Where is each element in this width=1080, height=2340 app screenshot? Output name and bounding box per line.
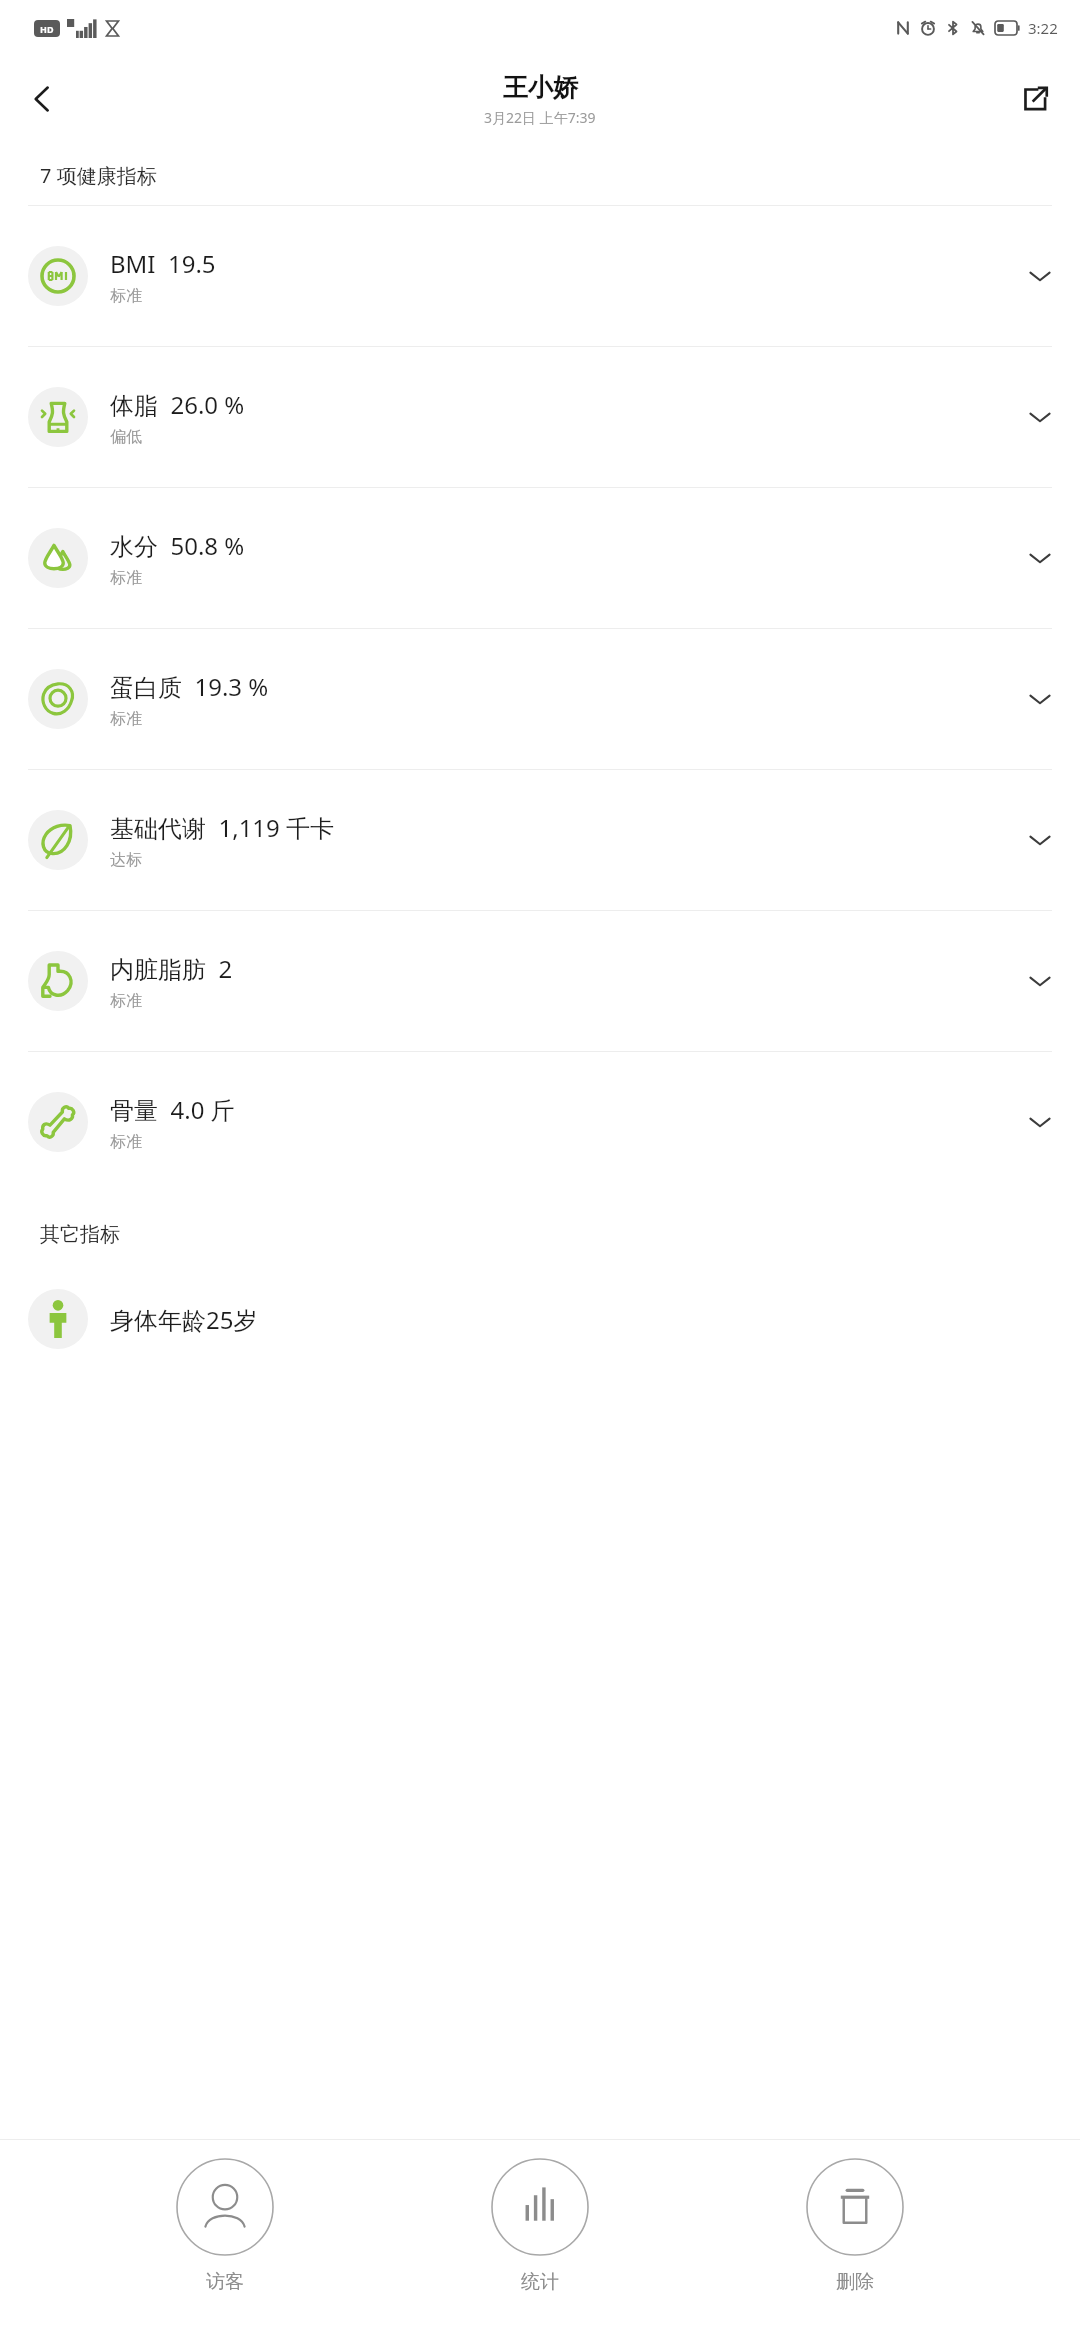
button[interactable]: 水分 50.8 % <box>0 488 1080 628</box>
staticText: 偏低 <box>110 427 142 447</box>
button[interactable]: 身体年龄25岁 <box>0 1269 1080 1369</box>
button[interactable]: 删除 <box>765 2140 945 2294</box>
staticText: HD <box>40 23 54 35</box>
button[interactable]: 访客 <box>135 2140 315 2294</box>
button[interactable]: 内脏脂肪 2 <box>0 911 1080 1051</box>
staticText: 统计 <box>521 2270 559 2294</box>
staticText: 水分 50.8 % <box>110 529 245 562</box>
button[interactable]: Back <box>12 68 74 130</box>
staticText: 标准 <box>110 709 142 729</box>
staticText: 其它指标 <box>40 1222 120 1247</box>
button[interactable]: 蛋白质 19.3 % <box>0 629 1080 769</box>
staticText: 身体年龄25岁 <box>110 1303 258 1336</box>
staticText: 蛋白质 19.3 % <box>110 670 269 703</box>
staticText: 标准 <box>110 568 142 588</box>
button[interactable]: 统计 <box>450 2140 630 2294</box>
staticText: 达标 <box>110 850 142 870</box>
staticText: 王小娇 <box>503 72 578 103</box>
staticText: 3:22 <box>1028 18 1058 38</box>
button[interactable]: 体脂 26.0 % <box>0 347 1080 487</box>
button[interactable]: 基础代谢 1,119 千卡 <box>0 770 1080 910</box>
staticText: 标准 <box>110 991 142 1011</box>
staticText: 3月22日 上午7:39 <box>484 108 596 127</box>
staticText: 体脂 26.0 % <box>110 388 245 421</box>
staticText: 删除 <box>836 2270 874 2294</box>
staticText: 标准 <box>110 286 142 306</box>
staticText: 访客 <box>206 2270 244 2294</box>
staticText: 标准 <box>110 1132 142 1152</box>
button[interactable]: 骨量 4.0 斤 <box>0 1052 1080 1192</box>
staticText: 内脏脂肪 2 <box>110 952 233 985</box>
staticText: 基础代谢 1,119 千卡 <box>110 811 335 844</box>
staticText: 7 项健康指标 <box>40 162 157 189</box>
staticText: BMI 19.5 <box>110 247 216 280</box>
button[interactable]: Share <box>1004 68 1066 130</box>
staticText: 骨量 4.0 斤 <box>110 1093 235 1126</box>
button[interactable]: BMI 19.5 <box>0 206 1080 346</box>
